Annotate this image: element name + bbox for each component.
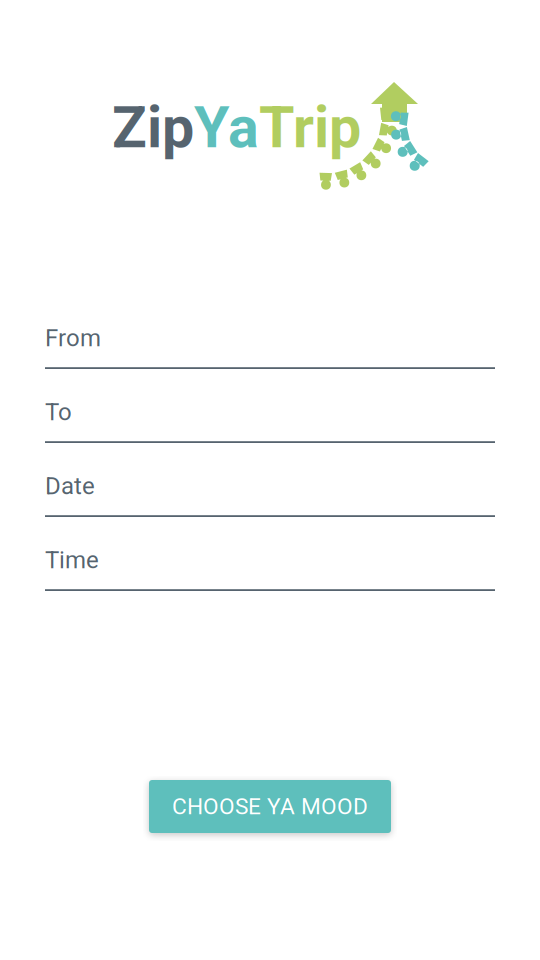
button[interactable]: CHOOSE YA MOOD (149, 780, 391, 833)
staticText: Trip (259, 94, 361, 161)
staticText: Ya (194, 94, 259, 161)
button[interactable]: To (45, 369, 495, 443)
staticText: From (45, 324, 101, 352)
staticText: Zip (112, 94, 194, 161)
staticText: To (45, 398, 72, 426)
staticText: Date (45, 472, 95, 500)
button[interactable]: Time (45, 517, 495, 591)
button[interactable]: Date (45, 443, 495, 517)
staticText: CHOOSE YA MOOD (172, 793, 368, 820)
button[interactable]: From (45, 295, 495, 369)
staticText: Time (45, 546, 99, 574)
